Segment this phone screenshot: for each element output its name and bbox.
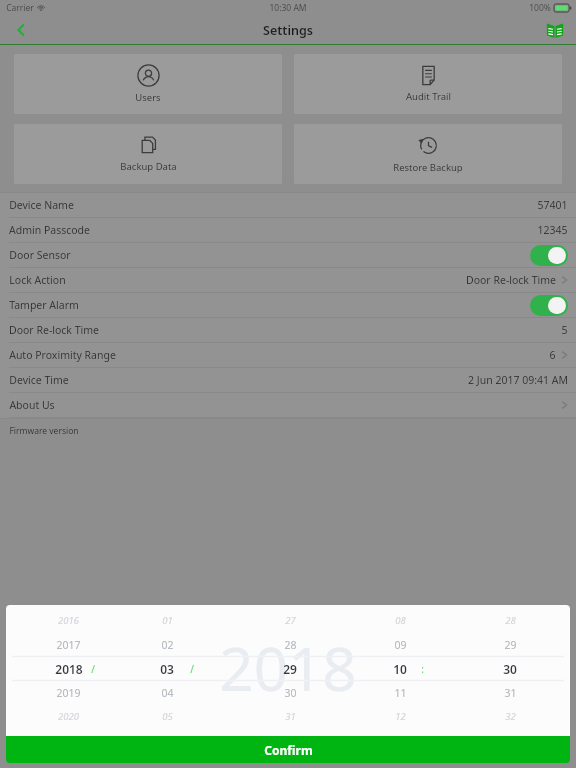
staticText: 31 — [504, 686, 517, 700]
staticText: Device Time — [9, 373, 69, 387]
staticText: : — [421, 662, 424, 676]
button[interactable]: Back — [0, 15, 42, 45]
button[interactable]: Confirm — [6, 736, 570, 763]
staticText: / — [91, 662, 95, 676]
staticText: 32 — [505, 710, 516, 723]
staticText: Tamper Alarm — [9, 298, 79, 312]
button[interactable]: Tamper Alarm — [0, 293, 576, 318]
staticText: 5 — [561, 323, 568, 337]
staticText: Confirm — [264, 742, 313, 758]
staticText: 2 Jun 2017 09:41 AM — [468, 373, 568, 387]
button[interactable]: Device Name — [0, 193, 576, 218]
staticText: 29 — [283, 661, 297, 677]
staticText: Auto Proximity Range — [9, 348, 116, 362]
staticText: 2018 — [219, 627, 357, 709]
button[interactable]: Door Re-lock Time — [0, 318, 576, 343]
staticText: 30 — [503, 661, 517, 677]
staticText: Door Sensor — [9, 248, 71, 262]
staticText: 11 — [394, 686, 407, 700]
staticText: 05 — [162, 710, 173, 723]
staticText: / — [190, 662, 194, 676]
staticText: Audit Trail — [406, 90, 451, 103]
staticText: 28 — [284, 638, 297, 652]
button[interactable]: Backup Data — [14, 124, 282, 184]
staticText: 2019 — [56, 686, 81, 700]
staticText: 27 — [285, 614, 296, 627]
staticText: 02 — [161, 638, 174, 652]
staticText: Lock Action — [9, 273, 66, 287]
staticText: Firmware version — [9, 425, 79, 437]
staticText: 29 — [504, 638, 517, 652]
staticText: 2017 — [56, 638, 81, 652]
staticText: 57401 — [537, 198, 568, 212]
button[interactable]: Auto Proximity Range — [0, 343, 576, 368]
button[interactable]: Manual — [534, 15, 576, 45]
staticText: 09 — [394, 638, 407, 652]
staticText: Settings — [263, 22, 313, 39]
button[interactable]: Tamper Alarm — [530, 295, 568, 316]
button[interactable]: About Us — [0, 393, 576, 418]
staticText: 12 — [395, 710, 406, 723]
staticText: 12345 — [537, 223, 568, 237]
button[interactable]: Device Time — [0, 368, 576, 393]
button[interactable]: Door Sensor — [0, 243, 576, 268]
staticText: 03 — [160, 661, 174, 677]
staticText: Admin Passcode — [9, 223, 90, 237]
button[interactable]: Audit Trail — [294, 54, 562, 114]
button[interactable]: Admin Passcode — [0, 218, 576, 243]
staticText: 30 — [284, 686, 297, 700]
staticText: 01 — [162, 614, 173, 627]
staticText: 100% — [529, 2, 551, 14]
staticText: 04 — [161, 686, 174, 700]
staticText: 6 — [549, 348, 556, 362]
staticText: 10 — [393, 661, 407, 677]
staticText: Users — [135, 91, 161, 104]
button[interactable]: Users — [14, 54, 282, 114]
button[interactable]: Restore Backup — [294, 124, 562, 184]
staticText: 2016 — [58, 614, 79, 627]
staticText: 2018 — [55, 661, 83, 677]
staticText: 2020 — [58, 710, 79, 723]
staticText: About Us — [9, 398, 55, 412]
staticText: Backup Data — [120, 160, 177, 173]
button[interactable]: Door Sensor — [530, 245, 568, 266]
staticText: 08 — [395, 614, 406, 627]
staticText: 10:30 AM — [269, 2, 307, 14]
staticText: Carrier — [6, 2, 34, 14]
staticText: Restore Backup — [393, 161, 463, 174]
staticText: Door Re-lock Time — [466, 273, 556, 287]
button[interactable]: Lock Action — [0, 268, 576, 293]
staticText: 28 — [505, 614, 516, 627]
staticText: Device Name — [9, 198, 74, 212]
staticText: 31 — [285, 710, 296, 723]
staticText: Door Re-lock Time — [9, 323, 99, 337]
